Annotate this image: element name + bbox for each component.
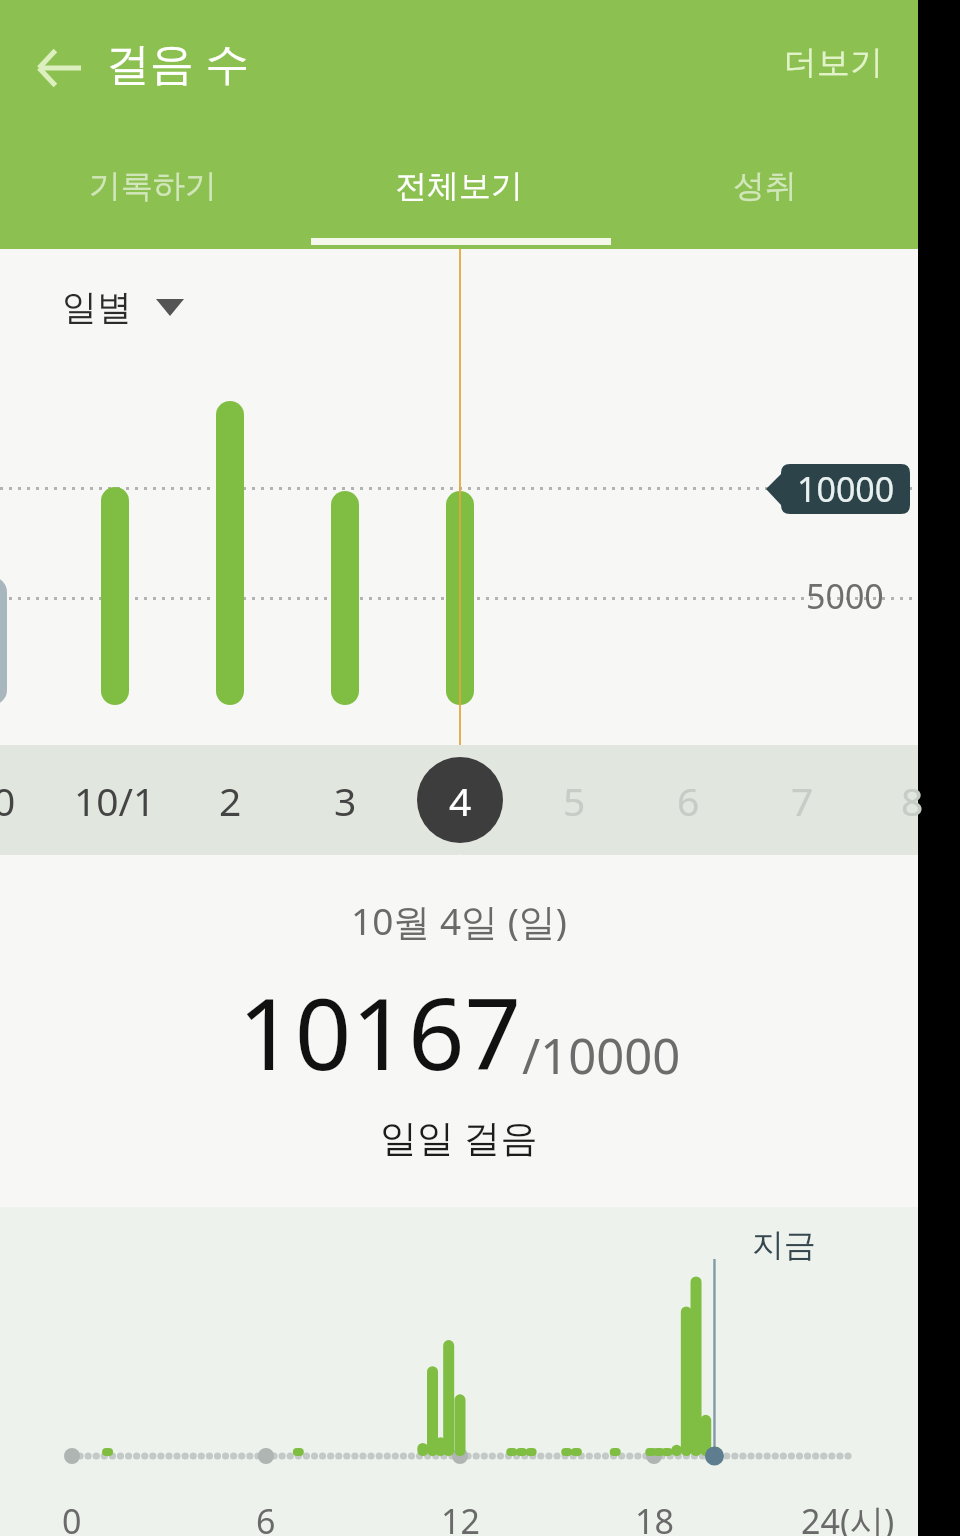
staticText: 10월 4일 (일)	[351, 895, 567, 946]
button[interactable]: 기록하기	[0, 146, 306, 226]
button[interactable]: 6	[633, 745, 743, 855]
button[interactable]: 5	[519, 745, 629, 855]
staticText: 3	[334, 774, 357, 827]
staticText: 0	[62, 1498, 82, 1536]
staticText: 8	[901, 774, 924, 827]
button[interactable]: 10/1	[60, 745, 170, 855]
staticText: 10/1	[74, 774, 156, 827]
staticText: 10000	[797, 466, 895, 512]
button[interactable]: 0	[0, 745, 59, 855]
staticText: 18	[635, 1498, 674, 1536]
button[interactable]: 일별	[48, 275, 198, 339]
staticText: 더보기	[784, 42, 883, 84]
button[interactable]: 전체보기	[306, 146, 612, 226]
staticText: 일별	[62, 285, 132, 329]
staticText: 10167	[238, 964, 522, 1099]
button[interactable]: 더보기	[770, 30, 897, 96]
staticText: 6	[677, 774, 700, 827]
staticText: 12	[441, 1498, 480, 1536]
button[interactable]: Back	[20, 28, 100, 108]
staticText: 전체보기	[395, 166, 523, 206]
button[interactable]: 성취	[612, 146, 918, 226]
staticText: 24(시)	[801, 1498, 895, 1536]
staticText: 기록하기	[89, 166, 217, 206]
staticText: 6	[256, 1498, 276, 1536]
staticText: 성취	[733, 166, 797, 206]
staticText: 지금	[752, 1225, 816, 1265]
staticText: 일일 걸음	[380, 1111, 538, 1162]
staticText: 2	[219, 774, 242, 827]
staticText: 5000	[806, 573, 884, 619]
button[interactable]: 2	[175, 745, 285, 855]
staticText: 0	[0, 774, 16, 827]
button[interactable]: 8	[857, 745, 960, 855]
staticText: /10000	[522, 1022, 681, 1089]
staticText: 5	[563, 774, 586, 827]
button[interactable]: 3	[290, 745, 400, 855]
staticText: 7	[791, 774, 814, 827]
staticText: 4	[449, 774, 472, 827]
staticText: 걸음 수	[106, 32, 250, 92]
button[interactable]: 4	[405, 745, 515, 855]
